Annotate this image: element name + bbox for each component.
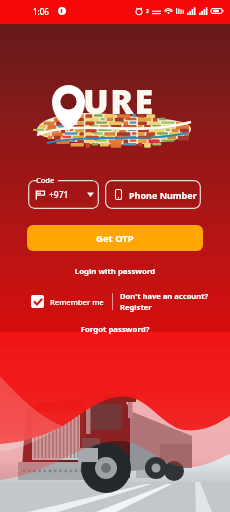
- staticText: 1:06: [33, 6, 49, 17]
- button[interactable]: Forgot password?: [0, 324, 230, 335]
- staticText: Don't have an account?: [120, 291, 209, 301]
- staticText: Register: [120, 302, 152, 312]
- staticText: Remember me: [50, 297, 104, 307]
- staticText: Phone Number: [129, 189, 197, 201]
- button[interactable]: Remember me: [31, 295, 104, 308]
- button[interactable]: Login with password: [0, 266, 230, 277]
- staticText: Code: [36, 175, 55, 185]
- button[interactable]: Country code +971: [28, 180, 99, 209]
- button[interactable]: Don't have an account?: [120, 291, 209, 312]
- staticText: 2: [146, 8, 149, 15]
- button[interactable]: Get OTP: [27, 225, 203, 251]
- staticText: +971: [49, 189, 69, 201]
- staticText: Get OTP: [96, 232, 134, 245]
- staticText: URE: [83, 78, 155, 124]
- button[interactable]: Phone Number: [105, 180, 201, 209]
